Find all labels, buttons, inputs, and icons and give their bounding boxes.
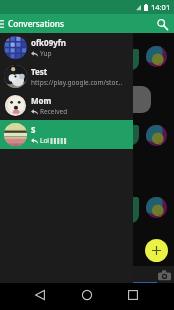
button[interactable]: Open navigation menu: [0, 14, 6, 33]
staticText: Mom: [31, 95, 52, 106]
button[interactable]: Home: [75, 283, 99, 307]
button[interactable]: Mom: [0, 91, 133, 120]
button[interactable]: Back: [28, 283, 52, 307]
staticText: S: [31, 124, 36, 135]
button[interactable]: Camera: [157, 268, 172, 282]
staticText: Received: [40, 107, 68, 116]
button[interactable]: Recent apps: [121, 283, 145, 307]
staticText: ofk09yfn: [31, 37, 67, 48]
button[interactable]: New conversation: [145, 239, 168, 262]
staticText: Conversations: [8, 18, 64, 29]
staticText: 14:01: [151, 2, 171, 12]
staticText: Lol: [40, 136, 50, 145]
button[interactable]: S: [0, 120, 133, 149]
button[interactable]: ofk09yfn: [0, 33, 133, 62]
staticText: Yup: [40, 49, 52, 58]
button[interactable]: Test: [0, 62, 133, 91]
staticText: Test: [31, 66, 48, 77]
staticText: https://play.google.com/stor…: [31, 78, 123, 87]
button[interactable]: Search: [154, 16, 170, 32]
